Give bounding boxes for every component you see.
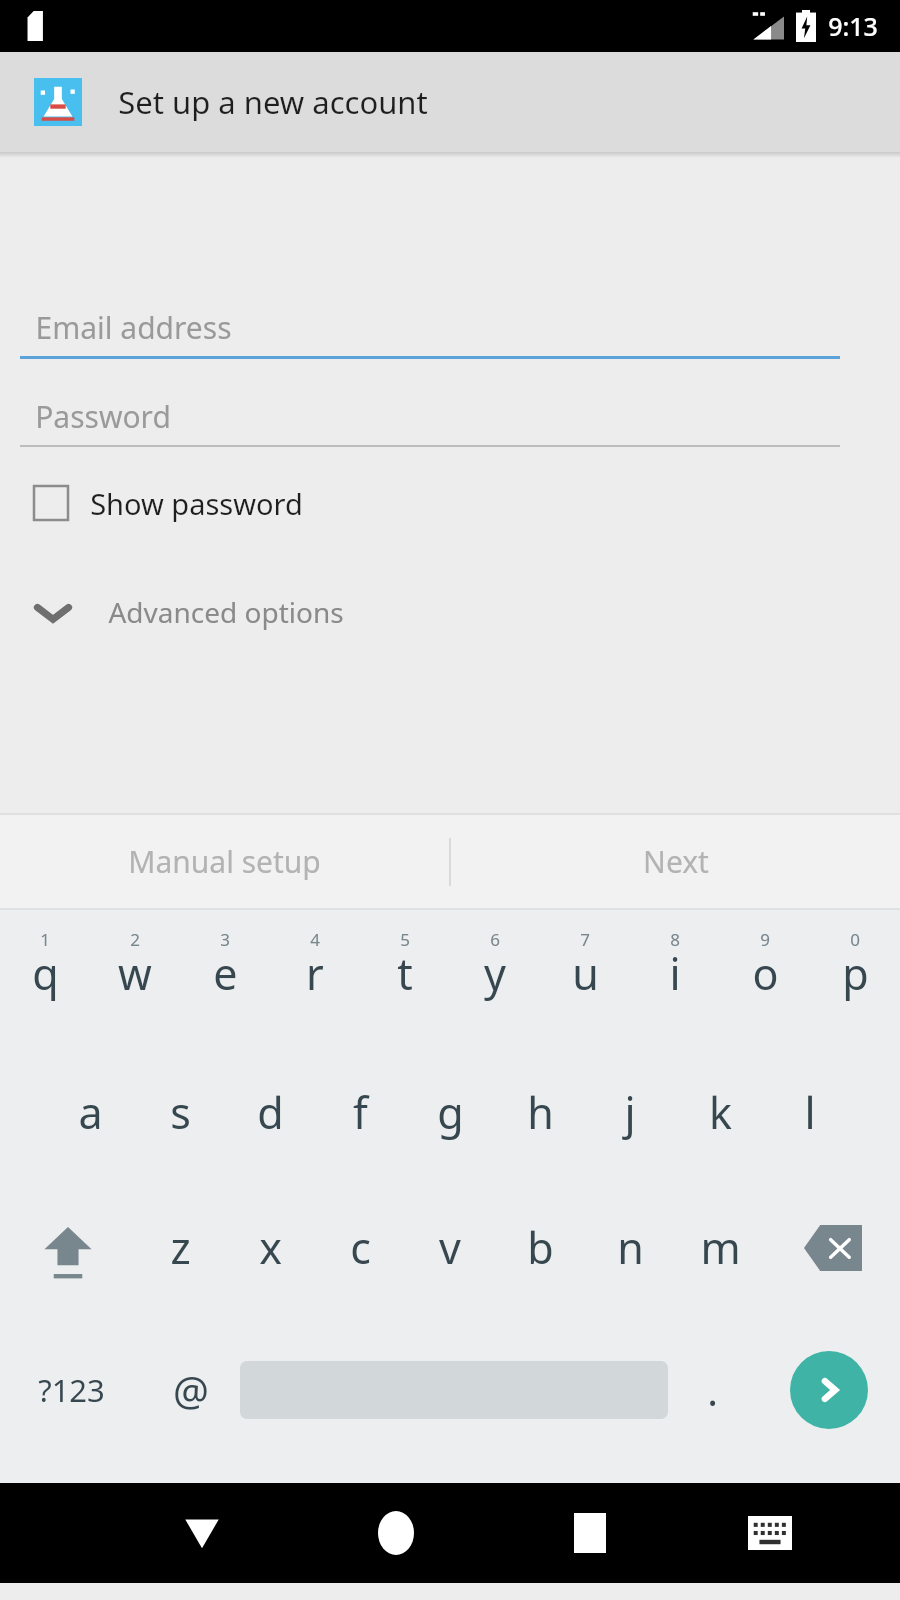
- button[interactable]: Advanced options: [30, 577, 870, 647]
- staticText: Show password: [90, 484, 303, 523]
- staticText: 6: [490, 928, 500, 951]
- button[interactable]: Hide keyboard: [105, 1483, 299, 1583]
- button[interactable]: 7: [540, 910, 630, 1045]
- staticText: j: [624, 1083, 636, 1142]
- staticText: o: [752, 944, 779, 1003]
- staticText: 2: [130, 928, 140, 951]
- button[interactable]: j: [585, 1045, 675, 1180]
- button[interactable]: Enter: [757, 1315, 900, 1465]
- staticText: 7: [580, 928, 590, 951]
- button[interactable]: b: [495, 1180, 585, 1315]
- button[interactable]: g: [405, 1045, 495, 1180]
- button[interactable]: l: [765, 1045, 855, 1180]
- button[interactable]: .: [668, 1315, 757, 1465]
- staticText: b: [527, 1218, 554, 1277]
- staticText: y: [484, 944, 506, 1003]
- staticText: n: [617, 1218, 644, 1277]
- staticText: Advanced options: [108, 593, 344, 631]
- staticText: 5: [400, 928, 410, 951]
- button[interactable]: h: [495, 1045, 585, 1180]
- staticText: e: [213, 944, 238, 1003]
- button[interactable]: Home: [299, 1483, 493, 1583]
- staticText: w: [118, 944, 152, 1003]
- button[interactable]: Password: [20, 387, 840, 447]
- button[interactable]: m: [675, 1180, 765, 1315]
- button[interactable]: s: [135, 1045, 225, 1180]
- button[interactable]: Email address: [20, 298, 840, 359]
- staticText: 0: [850, 928, 860, 951]
- button[interactable]: 2: [90, 910, 180, 1045]
- staticText: z: [170, 1218, 191, 1277]
- staticText: Password: [35, 396, 171, 437]
- staticText: g: [437, 1083, 464, 1142]
- staticText: k: [709, 1083, 732, 1142]
- button[interactable]: x: [225, 1180, 315, 1315]
- staticText: @: [173, 1363, 209, 1417]
- button[interactable]: 9: [720, 910, 810, 1045]
- button[interactable]: Recents: [493, 1483, 687, 1583]
- button[interactable]: a: [45, 1045, 135, 1180]
- staticText: 3: [220, 928, 230, 951]
- staticText: 1: [40, 928, 50, 951]
- button[interactable]: 6: [450, 910, 540, 1045]
- staticText: i: [669, 944, 681, 1003]
- button[interactable]: 3: [180, 910, 270, 1045]
- button[interactable]: 1: [0, 910, 90, 1045]
- button[interactable]: 0: [810, 910, 900, 1045]
- button[interactable]: k: [675, 1045, 765, 1180]
- button[interactable]: v: [405, 1180, 495, 1315]
- staticText: c: [350, 1218, 371, 1277]
- button[interactable]: Shift: [0, 1180, 135, 1315]
- staticText: 9:13: [828, 9, 878, 43]
- button[interactable]: Next: [451, 815, 900, 908]
- button[interactable]: n: [585, 1180, 675, 1315]
- staticText: m: [700, 1218, 741, 1277]
- button[interactable]: ?123: [0, 1315, 142, 1465]
- staticText: .: [707, 1363, 718, 1417]
- button[interactable]: Space: [240, 1315, 668, 1465]
- staticText: t: [397, 944, 413, 1003]
- button[interactable]: 8: [630, 910, 720, 1045]
- staticText: l: [804, 1083, 816, 1142]
- staticText: r: [306, 944, 324, 1003]
- button[interactable]: Switch keyboard: [687, 1483, 852, 1583]
- staticText: d: [257, 1083, 284, 1142]
- staticText: q: [32, 944, 59, 1003]
- button[interactable]: Show password: [34, 473, 866, 533]
- staticText: 9: [760, 928, 770, 951]
- button[interactable]: d: [225, 1045, 315, 1180]
- button[interactable]: 5: [360, 910, 450, 1045]
- staticText: u: [572, 944, 599, 1003]
- staticText: 8: [670, 928, 680, 951]
- staticText: f: [353, 1083, 368, 1142]
- staticText: Next: [643, 841, 709, 882]
- button[interactable]: @: [142, 1315, 240, 1465]
- staticText: Set up a new account: [118, 81, 428, 123]
- staticText: s: [170, 1083, 191, 1142]
- button[interactable]: Backspace: [765, 1180, 900, 1315]
- staticText: Manual setup: [128, 841, 321, 882]
- button[interactable]: f: [315, 1045, 405, 1180]
- staticText: x: [259, 1218, 282, 1277]
- staticText: Email address: [35, 307, 232, 348]
- button[interactable]: Manual setup: [0, 815, 449, 908]
- staticText: v: [439, 1218, 461, 1277]
- button[interactable]: 4: [270, 910, 360, 1045]
- staticText: p: [842, 944, 869, 1003]
- staticText: ?123: [38, 1369, 105, 1411]
- button[interactable]: c: [315, 1180, 405, 1315]
- staticText: h: [527, 1083, 554, 1142]
- button[interactable]: z: [135, 1180, 225, 1315]
- staticText: 4: [310, 928, 320, 951]
- staticText: a: [78, 1083, 103, 1142]
